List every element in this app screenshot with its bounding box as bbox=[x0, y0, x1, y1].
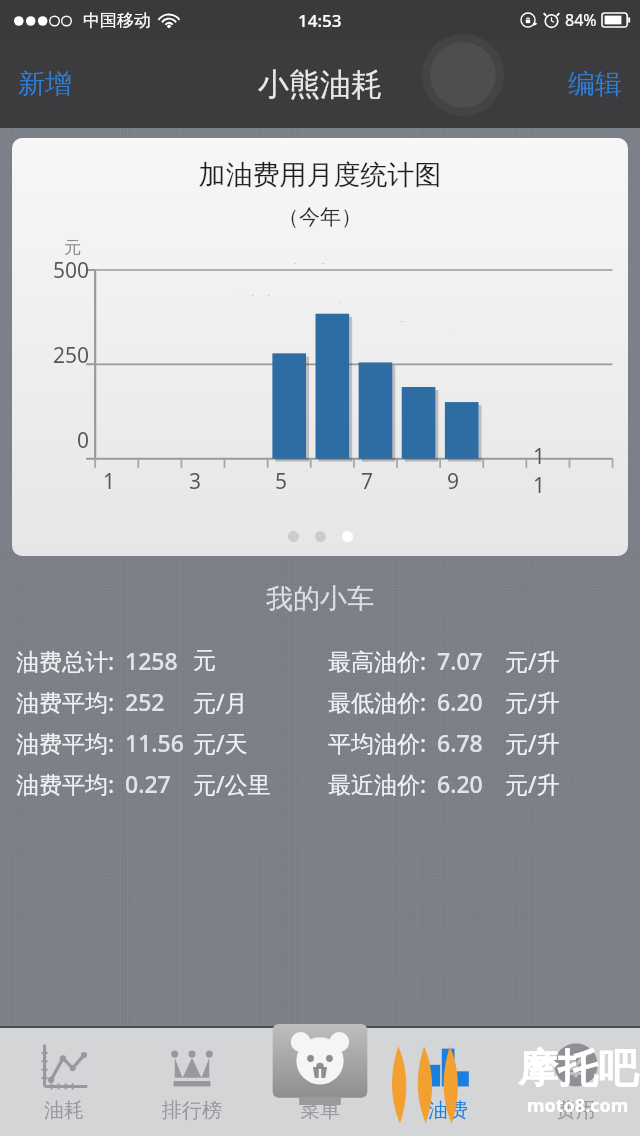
staticText: 500 bbox=[53, 256, 90, 285]
staticText: 11.56 bbox=[125, 727, 184, 758]
staticText: 6.20 bbox=[437, 686, 483, 717]
staticText: 250 bbox=[53, 341, 90, 370]
staticText: moto8.com bbox=[527, 1093, 629, 1118]
staticText: 1258 bbox=[125, 645, 178, 676]
staticText: 油耗 bbox=[44, 1098, 84, 1123]
staticText: 菜单 bbox=[300, 1098, 340, 1123]
staticText: 252 bbox=[125, 686, 165, 717]
button[interactable] bbox=[342, 531, 353, 542]
staticText: 元/升 bbox=[505, 645, 560, 676]
staticText: 元/月 bbox=[193, 686, 248, 717]
staticText: 油费总计: bbox=[16, 645, 115, 676]
staticText: 元 bbox=[193, 646, 216, 675]
staticText: 6.78 bbox=[437, 727, 483, 758]
staticText: 元/升 bbox=[505, 686, 560, 717]
staticText: 油费平均: bbox=[16, 727, 115, 758]
staticText: 7.07 bbox=[437, 645, 483, 676]
staticText: 小熊油耗 bbox=[258, 65, 382, 104]
button[interactable]: 排行榜 bbox=[128, 1026, 256, 1136]
staticText: 元/升 bbox=[505, 727, 560, 758]
staticText: 油费 bbox=[428, 1098, 468, 1123]
staticText: 中国移动 bbox=[83, 10, 151, 31]
staticText: 费用 bbox=[556, 1098, 596, 1123]
staticText: 0.27 bbox=[125, 768, 171, 799]
staticText: 油费平均: bbox=[16, 768, 115, 799]
staticText: 最近油价: bbox=[328, 768, 427, 799]
button[interactable] bbox=[315, 531, 326, 542]
staticText: 255 bbox=[315, 302, 375, 303]
staticText: 元/天 bbox=[193, 727, 248, 758]
button[interactable]: 费用 bbox=[512, 1026, 640, 1136]
staticText: 0 bbox=[77, 426, 90, 455]
staticText: 元/公里 bbox=[193, 768, 271, 799]
button[interactable]: 新增 bbox=[8, 57, 82, 111]
staticText: 最高油价: bbox=[328, 645, 427, 676]
staticText: 元/升 bbox=[505, 768, 560, 799]
staticText: （今年） bbox=[12, 204, 628, 230]
staticText: 84% bbox=[565, 9, 597, 31]
staticText: 摩托吧 bbox=[518, 1043, 638, 1093]
staticText: 排行榜 bbox=[162, 1098, 222, 1123]
staticText: 6.20 bbox=[437, 768, 483, 799]
button[interactable]: 编辑 bbox=[558, 57, 632, 111]
staticText: 14:53 bbox=[298, 9, 342, 32]
button[interactable] bbox=[288, 531, 299, 542]
staticText: 11 bbox=[533, 442, 534, 500]
staticText: 编辑 bbox=[568, 67, 622, 101]
button[interactable]: 菜单 bbox=[256, 1026, 384, 1136]
button[interactable]: 菜单 bbox=[268, 1024, 372, 1106]
staticText: 平均油价: bbox=[328, 727, 427, 758]
button[interactable]: 油费 bbox=[384, 1026, 512, 1136]
staticText: 元 bbox=[64, 237, 81, 258]
staticText: 加油费用月度统计图 bbox=[12, 158, 628, 192]
staticText: 新增 bbox=[18, 67, 72, 101]
staticText: 我的小车 bbox=[0, 582, 640, 616]
button[interactable]: 加油费用月度统计图 bbox=[12, 138, 628, 556]
staticText: 油费平均: bbox=[16, 686, 115, 717]
button[interactable]: 油耗 bbox=[0, 1026, 128, 1136]
staticText: 最低油价: bbox=[328, 686, 427, 717]
